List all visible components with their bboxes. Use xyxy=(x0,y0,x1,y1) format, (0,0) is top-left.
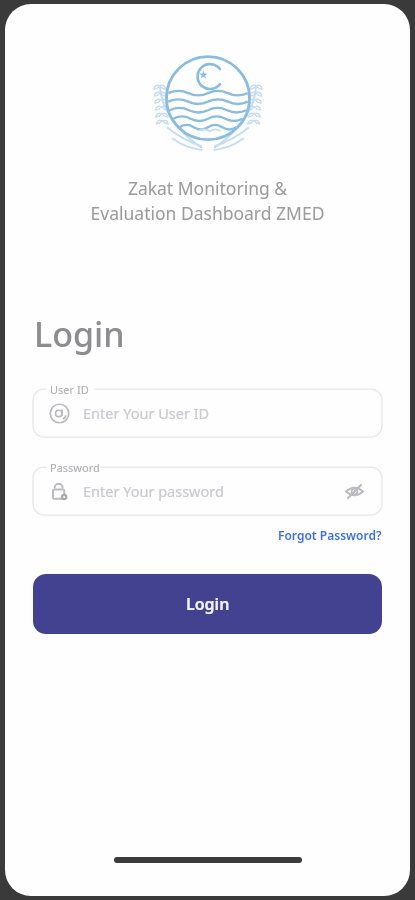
staticText: Zakat Monitoring & Evaluation Dashboard … xyxy=(27,176,388,225)
staticText: Forgot Password? xyxy=(278,527,382,543)
staticText: Enter Your User ID xyxy=(83,403,210,423)
staticText: User ID xyxy=(50,382,89,397)
button[interactable]: Login xyxy=(33,574,382,634)
staticText: Password xyxy=(50,460,100,475)
staticText: Login xyxy=(34,311,125,357)
staticText: Login xyxy=(186,593,230,615)
staticText: Enter Your password xyxy=(83,481,224,501)
button[interactable]: Show password xyxy=(338,475,370,507)
button[interactable]: Forgot Password? xyxy=(275,524,385,546)
